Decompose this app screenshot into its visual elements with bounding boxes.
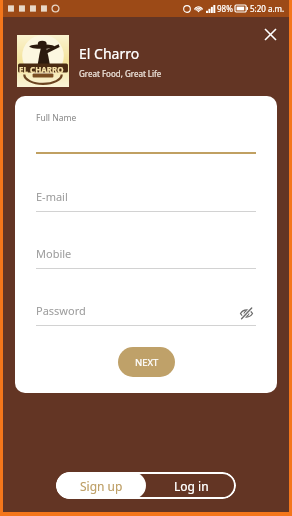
staticText: Full Name bbox=[36, 112, 77, 124]
button[interactable]: El Charro logo bbox=[17, 35, 69, 87]
staticText: Great Food, Great Life bbox=[79, 68, 162, 79]
button[interactable]: Mobile bbox=[36, 221, 256, 278]
button[interactable]: Password bbox=[36, 278, 256, 335]
button[interactable]: Log in bbox=[146, 472, 236, 499]
staticText: Log in bbox=[174, 478, 209, 494]
staticText: EL CHARRO bbox=[19, 64, 64, 75]
staticText: El Charro bbox=[79, 44, 140, 63]
button[interactable]: NEXT bbox=[118, 347, 175, 377]
staticText: 98% bbox=[217, 3, 233, 14]
staticText: Mobile bbox=[36, 246, 72, 261]
button[interactable]: Full Name bbox=[36, 110, 256, 164]
staticText: NEXT bbox=[135, 356, 159, 369]
button[interactable]: Close bbox=[258, 22, 282, 46]
button[interactable]: E-mail bbox=[36, 164, 256, 221]
staticText: 5:20 a.m. bbox=[250, 3, 285, 14]
button[interactable]: Show password bbox=[236, 303, 256, 323]
staticText: Sign up bbox=[80, 478, 123, 494]
staticText: Password bbox=[36, 303, 86, 318]
staticText: E-mail bbox=[36, 189, 68, 204]
button[interactable]: Sign up bbox=[56, 472, 146, 499]
